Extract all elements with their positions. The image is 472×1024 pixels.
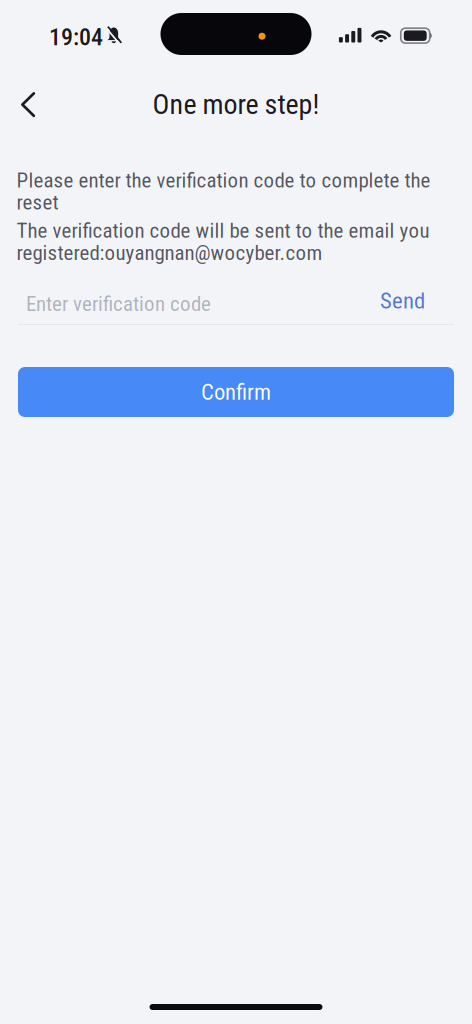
- staticText: The verification code will be sent to th…: [17, 218, 430, 243]
- staticText: 19:04: [49, 23, 103, 51]
- button[interactable]: Back: [0, 80, 54, 129]
- staticText: Please enter the verification code to co…: [17, 168, 431, 192]
- staticText: Enter verification code: [26, 291, 211, 316]
- staticText: Send: [380, 287, 425, 314]
- staticText: Confirm: [201, 379, 271, 405]
- button[interactable]: Send: [364, 278, 441, 323]
- staticText: registered:ouyangnan@wocyber.com: [17, 240, 323, 265]
- staticText: One more step!: [152, 88, 319, 121]
- staticText: reset: [17, 190, 59, 215]
- button[interactable]: Confirm: [18, 367, 454, 417]
